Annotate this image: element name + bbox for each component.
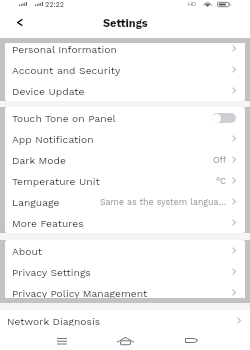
staticText: Off: [213, 155, 227, 165]
button[interactable]: Account and Security: [5, 59, 245, 80]
button[interactable]: Network Diagnosis: [0, 310, 250, 331]
staticText: App Notification: [12, 133, 94, 145]
button[interactable]: More Features: [5, 212, 245, 233]
staticText: Language: [12, 196, 60, 208]
button[interactable]: Dark Mode: [5, 149, 245, 170]
button[interactable]: Device Update: [5, 80, 245, 101]
staticText: 22:22: [45, 0, 65, 8]
button[interactable]: Recent apps: [45, 329, 79, 350]
staticText: °C: [216, 176, 227, 186]
staticText: Same as the system langua…: [100, 197, 227, 207]
staticText: Device Update: [12, 85, 85, 97]
staticText: Temperature Unit: [12, 175, 100, 187]
button[interactable]: Touch Tone on Panel: [5, 107, 245, 128]
button[interactable]: Touch Tone on Panel toggle: [212, 113, 236, 123]
staticText: Privacy Policy Management: [12, 287, 148, 299]
staticText: Privacy Settings: [12, 266, 91, 278]
button[interactable]: Language: [5, 191, 245, 212]
staticText: HD: [188, 1, 197, 7]
button[interactable]: Privacy Settings: [5, 261, 245, 282]
button[interactable]: Temperature Unit: [5, 170, 245, 191]
staticText: Personal Information: [12, 43, 117, 55]
button[interactable]: Back: [9, 12, 30, 33]
staticText: Touch Tone on Panel: [12, 112, 116, 124]
staticText: Account and Security: [12, 64, 121, 76]
button[interactable]: App Notification: [5, 128, 245, 149]
button[interactable]: About: [5, 240, 245, 261]
button[interactable]: Personal Information: [5, 38, 245, 59]
staticText: Dark Mode: [12, 154, 66, 166]
staticText: About: [12, 245, 43, 257]
button[interactable]: Home: [108, 329, 142, 350]
staticText: More Features: [12, 217, 84, 229]
button[interactable]: Privacy Policy Management: [5, 282, 245, 303]
staticText: Settings: [103, 17, 148, 30]
button[interactable]: Back: [174, 328, 208, 350]
staticText: Network Diagnosis: [7, 315, 101, 327]
